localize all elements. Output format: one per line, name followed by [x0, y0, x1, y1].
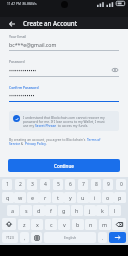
button[interactable]: i — [89, 192, 101, 203]
staticText: r — [44, 194, 47, 201]
staticText: 7 — [82, 181, 85, 188]
button[interactable]: o — [102, 192, 114, 203]
button[interactable]: 5 — [53, 179, 63, 190]
staticText: h — [75, 207, 79, 214]
staticText: 11:47 PM 86.86Bt/s — [7, 2, 37, 6]
staticText: , — [24, 235, 26, 241]
button[interactable]: h — [71, 205, 83, 216]
staticText: Secret Phrase — [35, 123, 57, 127]
staticText: . — [102, 235, 104, 241]
button[interactable]: l — [109, 205, 121, 216]
staticText: Password — [9, 59, 25, 64]
staticText: o — [106, 194, 110, 201]
button[interactable]: 0 — [116, 179, 126, 190]
staticText: j — [89, 207, 91, 214]
button[interactable]: 7 — [78, 179, 88, 190]
staticText: u — [81, 194, 85, 201]
staticText: t — [57, 194, 59, 201]
button[interactable]: r — [39, 192, 51, 203]
staticText: a — [11, 207, 15, 214]
button[interactable]: s — [20, 205, 32, 216]
button[interactable]: j — [84, 205, 96, 216]
staticText: 6 — [69, 181, 72, 188]
staticText: e — [31, 194, 35, 201]
staticText: Terms of — [87, 137, 101, 141]
button[interactable]: Show password — [111, 66, 119, 74]
button[interactable]: m — [99, 219, 111, 230]
button[interactable]: ?123 — [2, 232, 18, 243]
button[interactable]: u — [77, 192, 89, 203]
staticText: q — [6, 194, 10, 201]
button[interactable]: t — [52, 192, 64, 203]
staticText: 1 — [6, 181, 9, 188]
staticText: Continue — [54, 163, 75, 169]
button[interactable]: 4 — [40, 179, 50, 190]
button[interactable]: n — [85, 219, 97, 230]
staticText: p — [118, 194, 122, 201]
staticText: password for me. If I lose access to my … — [23, 119, 105, 123]
button[interactable]: 9 — [103, 179, 113, 190]
staticText: c — [50, 221, 53, 228]
button[interactable]: z — [18, 219, 30, 230]
button[interactable]: k — [96, 205, 108, 216]
staticText: ?123 — [6, 235, 14, 240]
button[interactable]: x — [31, 219, 43, 230]
button[interactable]: 1 — [2, 179, 12, 190]
staticText: z — [23, 221, 26, 228]
button[interactable]: 8 — [91, 179, 101, 190]
staticText: & — [20, 141, 25, 145]
staticText: Your Email — [9, 34, 27, 39]
button[interactable]: f — [45, 205, 57, 216]
staticText: i — [94, 194, 96, 201]
button[interactable]: Enter — [109, 232, 126, 243]
staticText: v — [63, 221, 66, 228]
staticText: w — [18, 194, 23, 201]
staticText: use my — [23, 123, 35, 127]
staticText: 2 — [19, 181, 22, 188]
button[interactable]: v — [58, 219, 70, 230]
button[interactable]: b — [72, 219, 84, 230]
button[interactable]: English — [44, 232, 96, 243]
button[interactable]: p — [114, 192, 126, 203]
staticText: f — [50, 207, 52, 214]
staticText: x — [36, 221, 39, 228]
button[interactable]: w — [14, 192, 26, 203]
button[interactable]: 6 — [65, 179, 75, 190]
staticText: m — [102, 221, 108, 228]
button[interactable]: Shift — [2, 218, 16, 230]
staticText: g — [62, 207, 66, 214]
staticText: By creating an account, you agree to Blo… — [9, 137, 87, 141]
staticText: Confirm Password — [9, 85, 39, 90]
button[interactable]: Backspace — [112, 218, 126, 230]
staticText: b — [76, 221, 80, 228]
staticText: s — [25, 207, 28, 214]
staticText: y — [69, 194, 72, 201]
button[interactable]: d — [33, 205, 45, 216]
button[interactable]: Change language — [31, 232, 42, 243]
staticText: . — [46, 141, 47, 145]
staticText: English — [64, 235, 77, 240]
staticText: 5 — [57, 181, 60, 188]
staticText: Service — [9, 141, 20, 145]
button[interactable]: q — [2, 192, 14, 203]
button[interactable]: . — [98, 232, 107, 243]
staticText: Privacy Policy — [25, 141, 46, 145]
button[interactable]: 3 — [27, 179, 37, 190]
staticText: k — [101, 207, 104, 214]
button[interactable]: a — [7, 205, 19, 216]
button[interactable]: Back — [6, 18, 17, 29]
button[interactable]: y — [64, 192, 76, 203]
button[interactable]: g — [58, 205, 70, 216]
button[interactable]: , — [20, 232, 29, 243]
staticText: ••••••••••••• — [9, 92, 35, 99]
staticText: n — [89, 221, 93, 228]
staticText: •••••••••••••• — [9, 67, 37, 74]
button[interactable]: I understand that Blockchain.com cannot … — [9, 111, 119, 131]
staticText: l — [114, 207, 116, 214]
button[interactable]: c — [45, 219, 57, 230]
staticText: Create an Account — [23, 19, 78, 27]
staticText: 3 — [31, 181, 34, 188]
button[interactable]: e — [27, 192, 39, 203]
button[interactable]: Continue — [8, 159, 120, 172]
button[interactable]: 2 — [15, 179, 25, 190]
